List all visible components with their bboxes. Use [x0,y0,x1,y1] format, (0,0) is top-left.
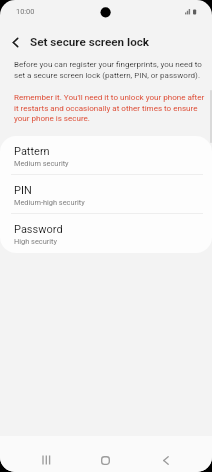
staticText: Set secure screen lock [30,35,150,49]
button[interactable]: Pattern [0,136,212,175]
staticText: Before you can register your fingerprint… [14,60,210,80]
staticText: Medium-high security [14,198,85,207]
button[interactable]: Password [0,214,212,253]
staticText: Remember it. You'll need it to unlock yo… [14,93,210,123]
button[interactable]: Navigate up [0,29,30,55]
button[interactable]: Back [147,447,184,472]
staticText: Pattern [14,145,50,158]
staticText: PIN [14,184,32,197]
button[interactable]: Recent apps [28,447,65,472]
staticText: Medium security [14,159,69,168]
staticText: High security [14,237,58,246]
button[interactable]: PIN [0,175,212,214]
staticText: 10:00 [16,7,35,16]
button[interactable]: Home [87,447,124,472]
staticText: Password [14,223,63,236]
